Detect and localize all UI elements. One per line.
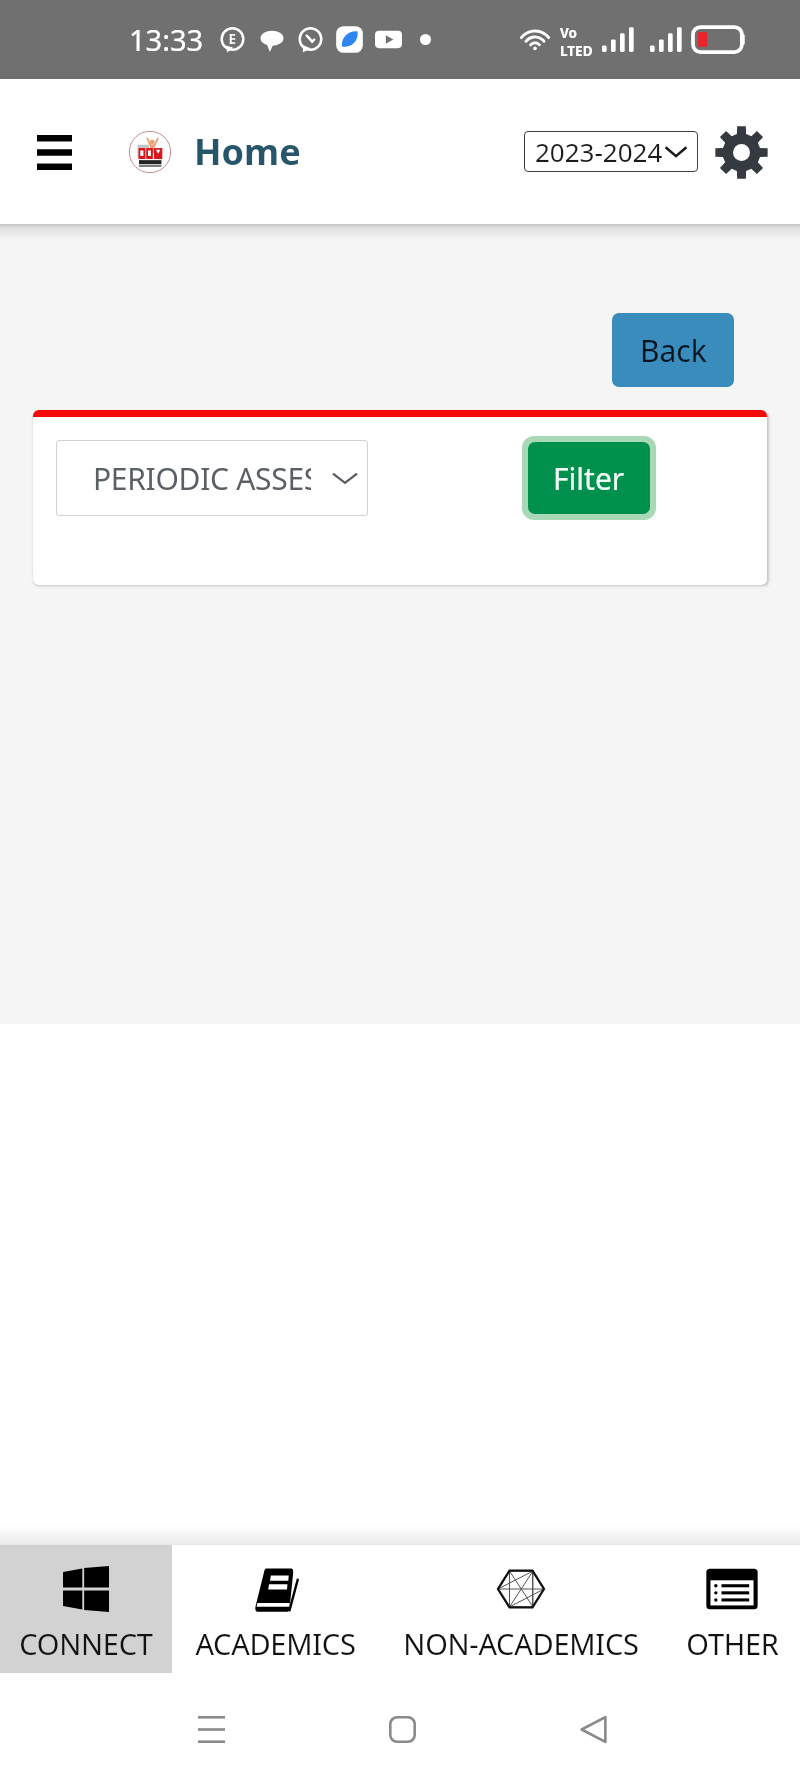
button[interactable]: Settings (713, 124, 769, 180)
button[interactable]: ACADEMICS (172, 1544, 378, 1673)
staticText: 13:33 (129, 20, 204, 59)
staticText: ACADEMICS (195, 1624, 356, 1663)
button[interactable]: PERIODIC ASSESSMENT (56, 440, 368, 516)
button[interactable]: 2023-2024 (524, 131, 698, 172)
button[interactable]: NON-ACADEMICS (378, 1544, 664, 1673)
staticText: CONNECT (19, 1624, 153, 1663)
button[interactable]: Recents (183, 1701, 239, 1757)
staticText: PERIODIC ASSESSMENT (93, 458, 311, 499)
staticText: Back (640, 330, 707, 371)
button[interactable]: OTHER (664, 1544, 800, 1673)
button[interactable]: Filter (528, 442, 650, 514)
button[interactable]: Home (374, 1701, 430, 1757)
staticText: LTED (560, 42, 592, 60)
staticText: NON-ACADEMICS (403, 1624, 639, 1663)
staticText: Home (194, 127, 301, 176)
button[interactable]: Back (612, 313, 734, 387)
button[interactable]: Menu (22, 120, 86, 184)
staticText: Vo (560, 24, 577, 42)
staticText: 2023-2024 (535, 134, 663, 169)
staticText: OTHER (686, 1624, 779, 1663)
button[interactable]: Back (565, 1701, 621, 1757)
staticText: Filter (553, 458, 625, 499)
button[interactable]: CONNECT (0, 1544, 172, 1673)
